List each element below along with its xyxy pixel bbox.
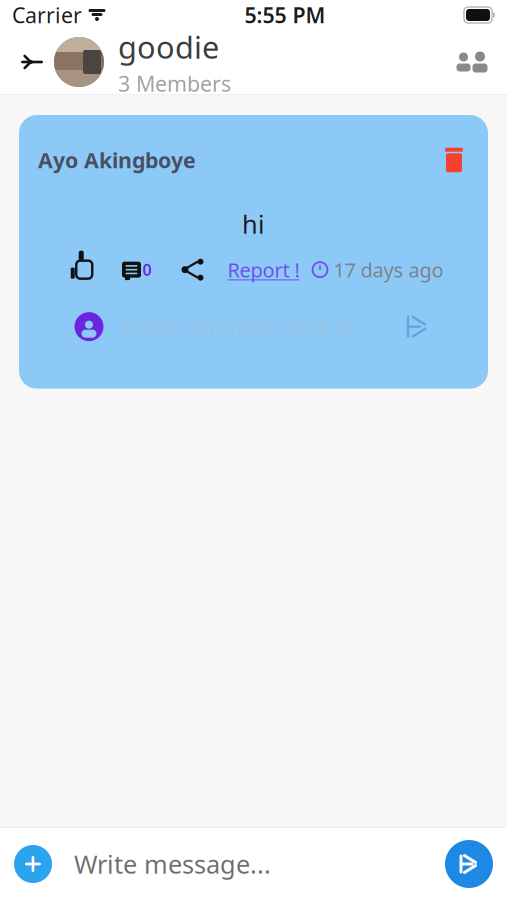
button[interactable]: Delete message [439, 145, 469, 175]
button[interactable]: Like [63, 255, 99, 285]
button[interactable]: Send message [445, 840, 493, 888]
button[interactable]: Members [447, 40, 497, 84]
button[interactable]: Comments [121, 255, 151, 285]
button[interactable]: goodie [54, 26, 231, 98]
button[interactable]: Report ! [227, 256, 299, 283]
staticText: 17 days ago [333, 256, 443, 283]
button[interactable]: Back [10, 40, 54, 84]
staticText: Ayo Akingboye [38, 146, 196, 174]
staticText: hi [242, 207, 265, 241]
staticText: 3 Members [118, 69, 231, 97]
staticText: 0 [142, 259, 151, 280]
staticText: goodie [118, 26, 219, 67]
button[interactable]: Send comment [400, 312, 434, 342]
staticText: Report ! [227, 256, 299, 283]
staticText: Insert comments here !!! [123, 313, 350, 340]
button[interactable]: Share [177, 255, 207, 285]
staticText: Write message... [74, 847, 271, 881]
staticText: 5:55 PM [244, 1, 325, 29]
staticText: Carrier [12, 1, 82, 29]
button[interactable]: Add attachment [14, 845, 52, 883]
button[interactable]: Write message... [52, 841, 445, 887]
button[interactable]: Your profile [73, 311, 105, 343]
